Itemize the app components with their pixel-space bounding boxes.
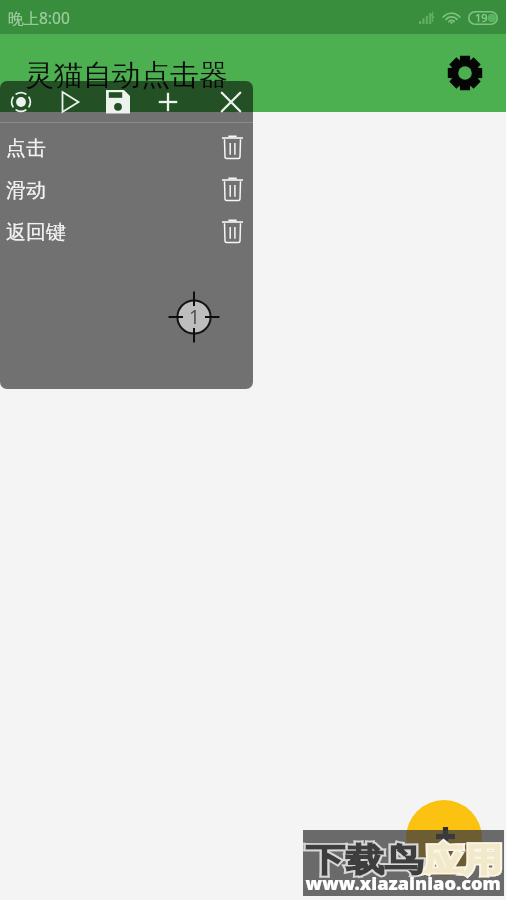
button[interactable]: Settings bbox=[442, 50, 488, 96]
button[interactable]: Play bbox=[48, 81, 92, 122]
staticText: 下载鸟 bbox=[306, 840, 424, 880]
button[interactable]: Add bbox=[146, 81, 190, 122]
staticText: 19 bbox=[475, 10, 488, 25]
button[interactable]: Save bbox=[96, 81, 140, 122]
button[interactable]: 滑动 bbox=[0, 169, 253, 211]
staticText: 点击 bbox=[6, 136, 216, 161]
button[interactable]: Add action bbox=[406, 800, 482, 876]
staticText: 下载鸟 bbox=[306, 840, 424, 880]
staticText: 应用 bbox=[424, 840, 502, 880]
button[interactable]: Delete bbox=[216, 173, 248, 205]
button[interactable]: Close bbox=[209, 81, 253, 122]
button[interactable]: 点击 bbox=[0, 127, 253, 169]
staticText: www.xiazainiao.com bbox=[306, 872, 501, 895]
button[interactable]: Record bbox=[0, 81, 43, 122]
staticText: 晚上8:00 bbox=[8, 7, 70, 28]
staticText: 1 bbox=[189, 304, 200, 330]
staticText: 返回键 bbox=[6, 220, 216, 245]
button[interactable]: Delete bbox=[216, 131, 248, 163]
staticText: 滑动 bbox=[6, 178, 216, 203]
button[interactable]: 返回键 bbox=[0, 211, 253, 253]
staticText: 灵猫自动点击器 bbox=[25, 57, 228, 94]
staticText: 应用 bbox=[424, 840, 502, 880]
button[interactable]: Delete bbox=[216, 215, 248, 247]
